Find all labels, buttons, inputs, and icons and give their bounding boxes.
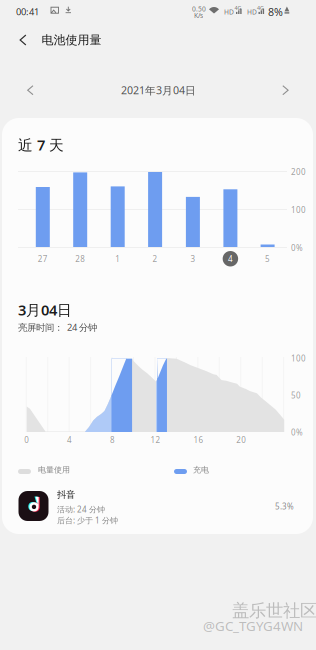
staticText: 12 (150, 435, 160, 445)
staticText: 100 (291, 204, 306, 215)
staticText: 3月04日 (18, 300, 72, 319)
staticText: 2 (153, 254, 158, 264)
staticText: 亮屏时间： 24 分钟 (18, 321, 97, 333)
staticText: HD (224, 7, 234, 16)
staticText: 1 (115, 254, 120, 264)
staticText: HD (247, 7, 257, 16)
staticText: 后台: 少于 1 分钟 (57, 515, 118, 526)
staticText: 50 (291, 390, 301, 401)
staticText: 200 (291, 166, 306, 177)
button[interactable]: 电池使用量 (41, 25, 101, 55)
staticText: 5.3% (275, 501, 294, 512)
staticText: @GC_TGYG4WN (203, 617, 303, 635)
staticText: 0.50 (192, 4, 206, 13)
staticText: 2021年3月04日 (121, 83, 196, 97)
staticText: 4 (228, 254, 233, 264)
button[interactable]: 2021年3月04日 (98, 75, 218, 105)
staticText: 20 (236, 435, 246, 445)
staticText: 4G (234, 4, 241, 12)
staticText: 8 (110, 435, 115, 445)
staticText: 抖音 (57, 489, 75, 500)
staticText: 3 (190, 254, 195, 264)
staticText: 28 (75, 254, 85, 264)
button[interactable]: Next day (268, 75, 302, 105)
staticText: 4G (257, 4, 264, 12)
staticText: 充电 (193, 465, 209, 475)
staticText: 0% (291, 242, 303, 253)
staticText: 盖乐世社区 (232, 600, 316, 621)
staticText: K/s (194, 11, 203, 20)
button[interactable]: Previous day (13, 75, 47, 105)
staticText: 4 (67, 435, 72, 445)
staticText: 电量使用 (38, 465, 70, 475)
button[interactable]: Back (8, 25, 38, 55)
staticText: 近 7 天 (18, 135, 64, 154)
staticText: 电池使用量 (41, 33, 101, 47)
staticText: 0% (291, 427, 303, 438)
button[interactable]: 抖音 (0, 487, 316, 533)
staticText: 16 (193, 435, 203, 445)
staticText: 27 (38, 254, 48, 264)
staticText: 00:41 (16, 5, 39, 18)
staticText: 5 (265, 254, 270, 264)
staticText: 100 (291, 353, 306, 364)
staticText: 活动: 24 分钟 (57, 504, 105, 515)
staticText: 0 (24, 435, 29, 445)
staticText: 8% (268, 5, 283, 19)
